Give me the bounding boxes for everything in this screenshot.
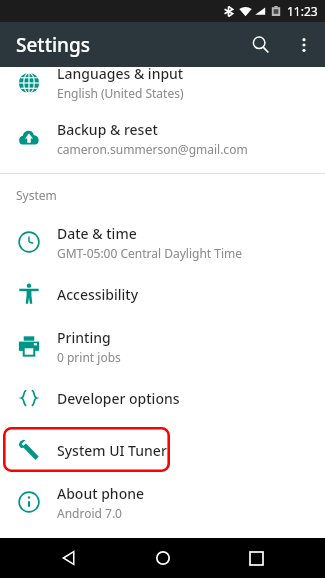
staticText: Date & time — [57, 224, 137, 243]
staticText: 11:23 — [287, 3, 318, 19]
staticText: Android 7.0 — [57, 505, 122, 521]
staticText: System UI Tuner — [57, 441, 167, 460]
button[interactable]: System UI Tuner — [0, 424, 325, 476]
button[interactable]: Developer options — [0, 372, 325, 424]
button[interactable]: More options — [283, 24, 325, 66]
button[interactable]: Backup & reset — [0, 112, 325, 164]
button[interactable]: Accessibility — [0, 268, 325, 320]
staticText: 0 print jobs — [57, 349, 121, 365]
staticText: Printing — [57, 328, 111, 347]
staticText: English (United States) — [57, 85, 184, 101]
button[interactable]: Home — [138, 538, 188, 578]
staticText: Developer options — [57, 389, 180, 408]
button[interactable]: About phone — [0, 476, 325, 528]
staticText: GMT-05:00 Central Daylight Time — [57, 245, 243, 261]
staticText: System — [16, 187, 57, 203]
button[interactable]: Search — [238, 22, 283, 67]
staticText: About phone — [57, 484, 145, 503]
button[interactable]: Printing — [0, 320, 325, 372]
staticText: cameron.summerson@gmail.com — [57, 141, 248, 157]
button[interactable]: Back — [44, 538, 94, 578]
button[interactable]: Recents — [231, 538, 281, 578]
button[interactable]: Languages & input — [0, 67, 325, 105]
staticText: Languages & input — [57, 67, 184, 83]
staticText: Settings — [16, 32, 90, 58]
button[interactable]: Date & time — [0, 216, 325, 268]
staticText: Backup & reset — [57, 120, 158, 139]
staticText: Accessibility — [57, 285, 139, 304]
